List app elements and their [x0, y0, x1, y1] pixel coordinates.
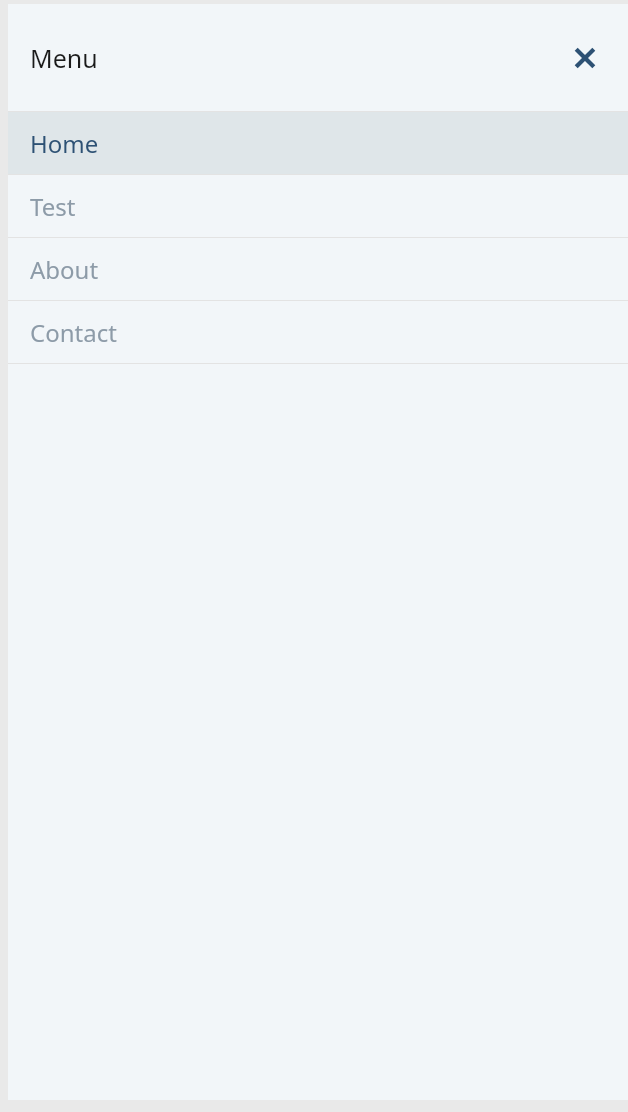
button[interactable]: About — [8, 238, 628, 300]
button[interactable]: Home — [8, 112, 628, 174]
staticText: Test — [30, 190, 76, 223]
staticText: Menu — [30, 41, 98, 75]
staticText: About — [30, 253, 99, 286]
button[interactable]: Close menu — [565, 38, 605, 78]
staticText: Home — [30, 127, 99, 160]
button[interactable]: Contact — [8, 301, 628, 363]
staticText: Contact — [30, 316, 117, 349]
button[interactable]: Test — [8, 175, 628, 237]
